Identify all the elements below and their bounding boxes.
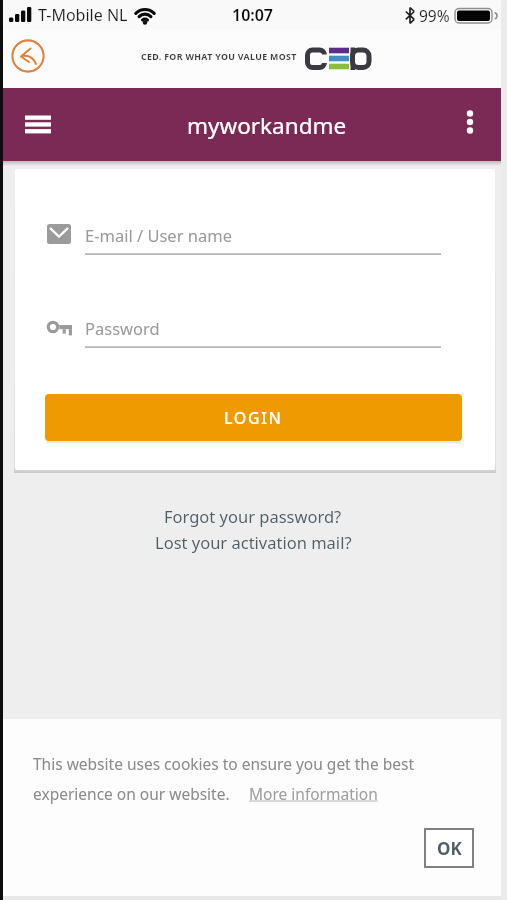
button[interactable]: LOGIN [45, 394, 462, 441]
button[interactable] [10, 38, 46, 74]
button[interactable] [17, 108, 59, 142]
staticText: T-Mobile NL [38, 4, 128, 26]
button[interactable]: More information [249, 782, 389, 804]
button[interactable] [455, 104, 487, 144]
staticText: This website uses cookies to ensure you … [33, 753, 414, 774]
staticText: LOGIN [224, 407, 283, 429]
staticText: E-mail / User name [85, 224, 232, 246]
staticText: OK [437, 837, 462, 860]
staticText: More information [249, 783, 378, 804]
staticText: myworkandme [187, 110, 347, 140]
button[interactable]: OK [425, 829, 473, 867]
staticText: Forgot your password? [164, 505, 342, 527]
button[interactable] [40, 214, 450, 258]
staticText: Password [85, 317, 160, 339]
button[interactable]: Forgot your password? [103, 504, 403, 528]
button[interactable]: Lost your activation mail? [103, 530, 403, 554]
staticText: 99% [419, 5, 450, 26]
staticText: Lost your activation mail? [155, 531, 352, 553]
button[interactable] [40, 307, 450, 351]
staticText: CED. FOR WHAT YOU VALUE MOST [141, 51, 297, 63]
staticText: 10:07 [232, 4, 274, 26]
staticText: experience on our website. [33, 783, 230, 804]
